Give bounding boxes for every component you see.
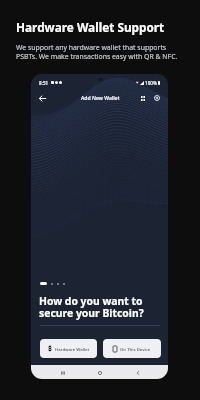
staticText: Add New Wallet — [81, 95, 120, 102]
staticText: 8:51 — [39, 80, 49, 86]
staticText: ₿ — [48, 344, 52, 353]
staticText: Hardware Wallet — [55, 346, 90, 352]
button[interactable]: On This Device — [103, 339, 161, 358]
staticText: 100% — [145, 80, 157, 86]
staticText: Hardware Wallet Support — [16, 19, 165, 35]
button[interactable]: Home — [93, 366, 106, 379]
staticText: On This Device — [120, 346, 151, 352]
button[interactable]: Add wallet — [151, 92, 163, 104]
button[interactable]: Back — [131, 366, 144, 379]
button[interactable]: ₿ — [40, 339, 97, 358]
button[interactable]: Back — [36, 92, 49, 105]
staticText: We support any hardware wallet that supp… — [16, 43, 178, 61]
button[interactable]: Scan QR code — [137, 92, 149, 104]
button[interactable]: Recents — [56, 366, 69, 379]
staticText: How do you want to secure your Bitcoin? — [39, 294, 144, 320]
